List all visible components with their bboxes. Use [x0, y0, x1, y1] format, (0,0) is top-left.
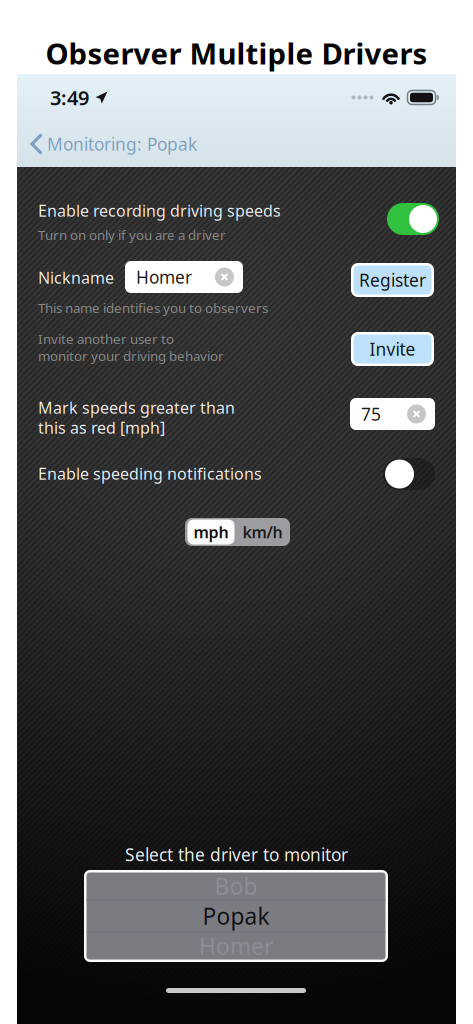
button[interactable]: Homer	[125, 261, 243, 293]
staticText: Homer	[199, 931, 273, 961]
staticText: Register	[359, 268, 426, 291]
button[interactable]	[383, 458, 435, 490]
staticText: Nickname	[38, 267, 114, 288]
staticText: Enable recording driving speeds	[38, 200, 281, 221]
button[interactable]: Bob	[84, 870, 388, 962]
button[interactable]: Invite	[351, 332, 434, 366]
button[interactable]: Monitoring: Popak	[17, 126, 197, 161]
staticText: Invite another user to	[38, 330, 174, 348]
button[interactable]: Register	[351, 263, 434, 297]
staticText: Mark speeds greater than	[38, 397, 235, 418]
button[interactable]	[387, 203, 439, 235]
staticText: Enable speeding notifications	[38, 463, 262, 484]
staticText: 75	[361, 402, 381, 425]
staticText: Select the driver to monitor	[125, 843, 348, 866]
staticText: mph	[193, 521, 228, 543]
staticText: Invite	[369, 337, 415, 360]
staticText: This name identifies you to observers	[38, 299, 268, 317]
button[interactable]: mph	[186, 518, 236, 546]
button[interactable]: km/h	[236, 518, 289, 546]
staticText: Bob	[214, 871, 257, 901]
staticText: 3:49	[50, 84, 89, 111]
button[interactable]: 75	[350, 398, 435, 430]
staticText: Turn on only if you are a driver	[38, 226, 226, 244]
staticText: Observer Multiple Drivers	[45, 33, 427, 72]
staticText: km/h	[242, 521, 282, 543]
staticText: this as red [mph]	[38, 417, 165, 438]
staticText: Homer	[136, 265, 192, 288]
staticText: Popak	[202, 901, 269, 931]
staticText: Monitoring: Popak	[47, 132, 197, 155]
staticText: monitor your driving behavior	[38, 347, 224, 365]
